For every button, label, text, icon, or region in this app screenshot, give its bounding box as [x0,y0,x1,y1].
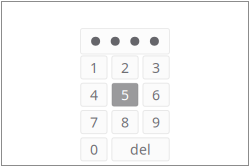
staticText: 2 [121,58,129,77]
button[interactable]: 9 [143,110,169,134]
staticText: 1 [90,58,98,77]
staticText: 3 [152,58,160,77]
button[interactable]: 0 [81,138,107,161]
button[interactable]: 6 [143,83,169,106]
button[interactable]: 3 [143,56,169,79]
button[interactable]: 2 [112,56,138,79]
staticText: 8 [121,112,129,132]
staticText: del [130,140,151,159]
button[interactable]: 8 [112,110,138,134]
button[interactable]: 7 [81,110,107,134]
staticText: 4 [90,85,98,104]
button[interactable]: del [112,138,169,161]
staticText: 5 [121,85,129,104]
button[interactable]: 4 [81,83,107,106]
button[interactable]: 5 [112,83,138,106]
staticText: 7 [90,112,98,132]
staticText: 9 [152,112,160,132]
staticText: 0 [90,140,98,159]
staticText: 6 [152,85,160,104]
button[interactable]: 1 [81,56,107,79]
